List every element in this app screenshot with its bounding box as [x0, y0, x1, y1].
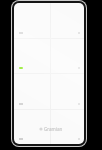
staticText: Gramian [44, 126, 63, 132]
button[interactable] [14, 63, 84, 73]
button[interactable] [14, 28, 84, 38]
button[interactable]: Gramian logo [14, 134, 84, 144]
other: Gramian logo [39, 127, 43, 131]
button[interactable] [14, 99, 84, 109]
